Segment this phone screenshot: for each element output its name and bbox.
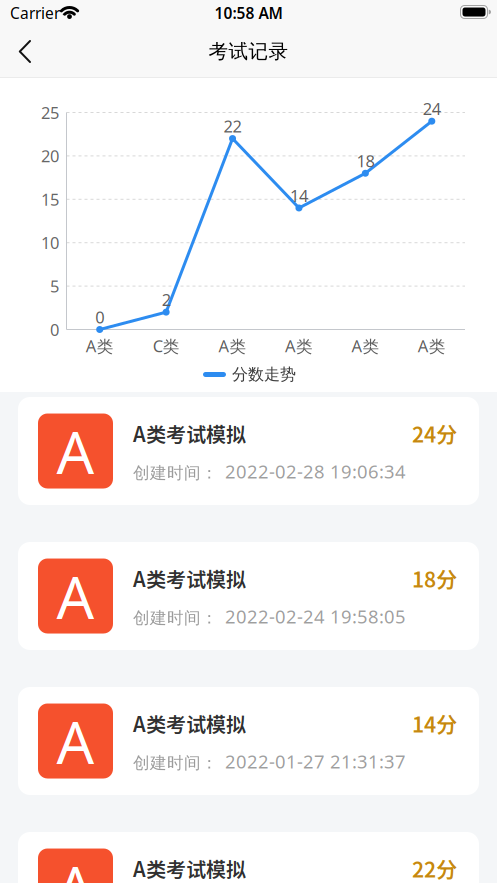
staticText: 分数走势 [232,365,296,384]
staticText: 创建时间： [133,463,218,483]
staticText: 创建时间： [133,753,218,773]
staticText: 创建时间： [133,608,218,628]
staticText: A类考试模拟 [133,709,246,737]
staticText: A类 [285,335,313,357]
staticText: 2022-01-27 21:31:37 [225,749,406,773]
staticText: 14 [290,184,308,206]
staticText: 2 [162,289,171,311]
button[interactable]: A [18,542,479,650]
staticText: 24 [423,98,441,120]
staticText: 22 [223,115,241,137]
staticText: A类 [86,335,114,357]
staticText: 18分 [412,563,457,593]
staticText: A类考试模拟 [133,854,246,882]
staticText: 14分 [412,708,457,738]
staticText: 25 [41,101,59,123]
staticText: 0 [50,318,59,340]
staticText: A [56,702,94,780]
staticText: 24分 [412,418,457,448]
staticText: A类 [351,335,379,357]
staticText: 18 [356,150,374,172]
staticText: 2022-02-28 19:06:34 [225,459,406,483]
staticText: 5 [50,275,59,297]
staticText: A类 [418,335,446,357]
staticText: 10 [41,232,59,254]
staticText: 2022-02-24 19:58:05 [225,604,406,628]
staticText: A类 [218,335,246,357]
staticText: 10:58 AM [214,3,282,23]
staticText: 15 [41,188,59,210]
staticText: Carrier [10,3,60,23]
button[interactable]: A [18,832,479,883]
button[interactable]: A [18,397,479,505]
staticText: A [56,557,94,635]
button[interactable]: A [18,687,479,795]
staticText: 22分 [412,853,457,883]
button[interactable]: Back [14,36,58,67]
staticText: 20 [41,145,59,167]
staticText: A [56,412,94,490]
staticText: A类考试模拟 [133,564,246,592]
staticText: A类考试模拟 [133,419,246,447]
staticText: 0 [95,306,104,328]
staticText: C类 [153,335,180,357]
staticText: A [56,847,94,883]
staticText: 考试记录 [208,39,288,63]
